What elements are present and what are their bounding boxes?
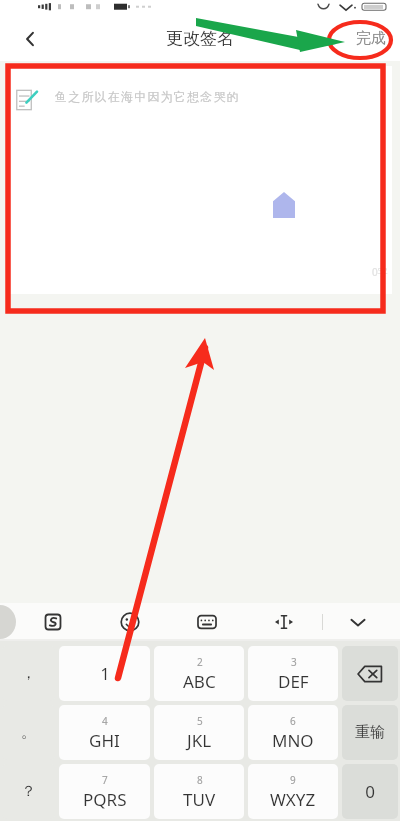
staticText: PQRS [83, 788, 127, 811]
button[interactable]: Back [14, 23, 46, 55]
button[interactable]: 鱼之所以在海中因为它想念哭的 [8, 66, 392, 305]
staticText: TUV [183, 788, 216, 811]
button[interactable]: Emoji [91, 603, 168, 641]
staticText: ？ [21, 782, 36, 801]
staticText: 5 [197, 714, 203, 728]
staticText: ABC [183, 670, 216, 693]
staticText: 0字 [372, 265, 388, 279]
button[interactable]: 。 [2, 705, 55, 760]
button[interactable]: 1 [59, 646, 150, 701]
staticText: 重输 [355, 723, 385, 742]
button[interactable]: 3 [248, 646, 338, 701]
button[interactable]: Hide keyboard [323, 603, 392, 641]
staticText: 0 [365, 780, 375, 803]
button[interactable]: 2 [154, 646, 244, 701]
button[interactable]: Sogou input [14, 603, 91, 641]
button[interactable]: 5 [154, 705, 244, 760]
staticText: 鱼之所以在海中因为它想念哭的 [55, 89, 240, 104]
staticText: 8 [197, 773, 203, 787]
staticText: 4 [102, 714, 108, 728]
button[interactable]: Keyboard [168, 603, 245, 641]
button[interactable]: 7 [59, 764, 150, 819]
staticText: GHI [89, 729, 120, 752]
button[interactable]: 重输 [342, 705, 398, 760]
button[interactable]: 6 [248, 705, 338, 760]
staticText: ， [21, 664, 36, 683]
staticText: WXYZ [270, 788, 316, 811]
button[interactable]: ， [2, 646, 55, 701]
button[interactable]: 0 [342, 764, 398, 819]
staticText: JKL [187, 729, 212, 752]
staticText: 2 [197, 655, 203, 669]
staticText: 9 [290, 773, 296, 787]
button[interactable]: 9 [248, 764, 338, 819]
button[interactable]: 8 [154, 764, 244, 819]
staticText: 1 [100, 663, 110, 685]
button[interactable]: Backspace [342, 646, 398, 701]
staticText: 7 [102, 773, 108, 787]
staticText: 3 [291, 655, 297, 669]
button[interactable]: 完成 [356, 29, 386, 48]
staticText: 。 [21, 723, 36, 742]
staticText: MNO [272, 729, 314, 752]
button[interactable]: Move cursor [245, 603, 322, 641]
staticText: DEF [278, 670, 309, 693]
button[interactable]: ？ [2, 764, 55, 819]
button[interactable]: 4 [59, 705, 150, 760]
staticText: 完成 [356, 29, 386, 48]
staticText: 更改签名 [166, 28, 234, 49]
staticText: 6 [290, 714, 296, 728]
